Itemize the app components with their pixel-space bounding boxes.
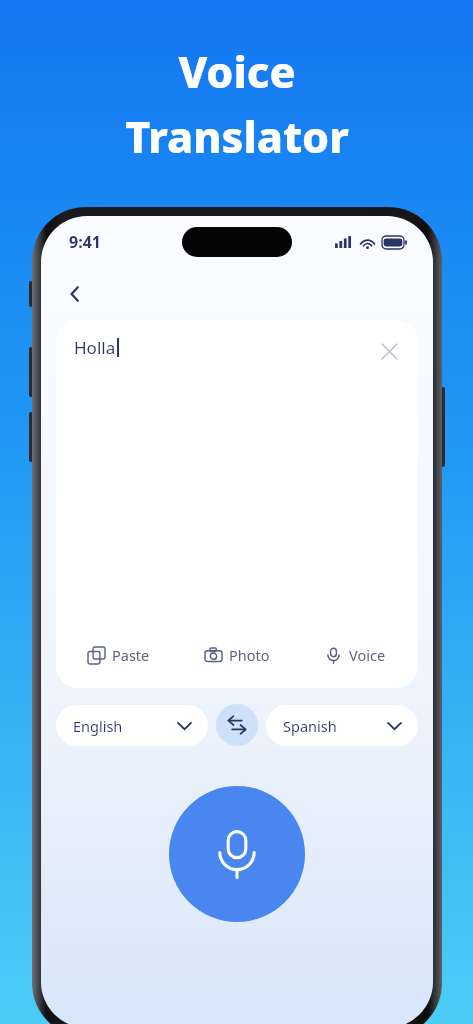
button[interactable]: Start voice recording — [169, 786, 305, 922]
button[interactable]: Voice — [296, 639, 414, 671]
staticText: Paste — [112, 645, 150, 665]
button[interactable]: Photo — [178, 639, 296, 671]
staticText: Translator — [125, 107, 349, 166]
button[interactable]: Spanish — [266, 705, 418, 746]
button[interactable]: English — [56, 705, 208, 746]
staticText: Holla — [74, 336, 116, 359]
button[interactable]: Paste — [60, 639, 178, 671]
staticText: Voice — [349, 645, 386, 665]
staticText: Photo — [229, 645, 270, 665]
staticText: 9:41 — [69, 231, 101, 253]
staticText: Spanish — [283, 716, 337, 736]
button[interactable]: Clear text — [374, 336, 404, 366]
button[interactable]: Back — [55, 274, 95, 314]
staticText: English — [73, 716, 123, 736]
button[interactable]: Swap languages — [216, 704, 258, 746]
staticText: Voice — [178, 42, 296, 101]
